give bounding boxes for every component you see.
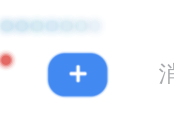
button[interactable]: New message <box>46 51 109 98</box>
staticText: 消 <box>159 60 174 88</box>
